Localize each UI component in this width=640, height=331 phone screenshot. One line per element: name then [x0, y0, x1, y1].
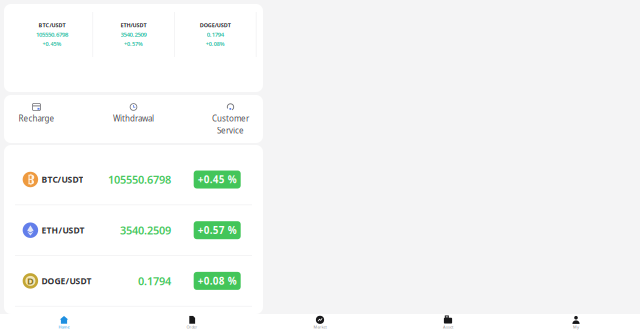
button[interactable]: My — [512, 314, 640, 331]
button[interactable]: Customer — [182, 95, 279, 143]
button[interactable]: BTC/USDT — [4, 154, 263, 204]
button[interactable]: D — [4, 256, 263, 306]
staticText: Recharge — [18, 113, 54, 124]
button[interactable]: DOGE/USDT — [175, 12, 256, 57]
staticText: Home — [58, 324, 69, 330]
staticText: ETH/USDT — [121, 21, 147, 29]
button[interactable]: Order — [128, 314, 256, 331]
staticText: 0.1794 — [138, 273, 171, 288]
staticText: BTC/USDT — [38, 21, 65, 29]
button[interactable]: Asset — [384, 314, 512, 331]
staticText: 105550.6798 — [108, 172, 171, 187]
button[interactable]: ETH/USDT — [93, 12, 174, 57]
staticText: 3540.2509 — [121, 30, 147, 39]
button[interactable]: Withdrawal — [85, 95, 182, 143]
staticText: 3540.2509 — [120, 223, 171, 238]
button[interactable]: Recharge — [0, 95, 85, 143]
staticText: ETH/USDT — [41, 224, 84, 236]
staticText: +0.57% — [124, 40, 143, 47]
staticText: DOGE/USDT — [200, 21, 231, 29]
button[interactable]: BTC/USDT — [11, 12, 92, 57]
staticText: +0.57 % — [198, 223, 237, 237]
button[interactable]: ETH/USDT — [4, 205, 263, 255]
button[interactable]: Home — [0, 314, 128, 331]
staticText: BTC/USDT — [41, 174, 83, 185]
staticText: My — [573, 324, 579, 330]
staticText: Order — [186, 324, 197, 330]
staticText: Market — [313, 324, 326, 330]
staticText: Customer — [212, 113, 249, 124]
staticText: +0.45% — [42, 40, 61, 47]
staticText: DOGE/USDT — [41, 275, 91, 287]
staticText: +0.08 % — [198, 274, 237, 288]
staticText: D — [27, 275, 34, 287]
staticText: 0.1794 — [207, 30, 224, 39]
staticText: Service — [217, 125, 244, 136]
staticText: +0.08% — [206, 40, 225, 47]
button[interactable]: Market — [256, 314, 384, 331]
staticText: Asset — [443, 324, 453, 330]
staticText: Withdrawal — [113, 113, 154, 124]
staticText: +0.45 % — [198, 173, 237, 186]
staticText: 105550.6798 — [36, 30, 68, 39]
